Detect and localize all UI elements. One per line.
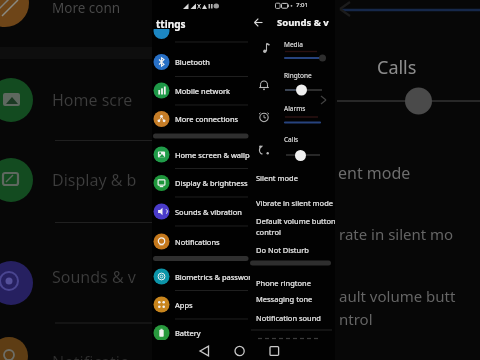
staticText: More connections xyxy=(175,114,239,124)
staticText: Apps xyxy=(175,300,193,310)
button[interactable] xyxy=(266,343,283,359)
button[interactable]: Bluetooth xyxy=(152,48,248,76)
staticText: Biometrics & passwor xyxy=(175,272,252,282)
button[interactable]: Sounds & vibration xyxy=(152,198,248,226)
button[interactable]: Battery xyxy=(152,319,248,347)
button[interactable]: Messaging tone xyxy=(250,294,335,308)
staticText: Notifications xyxy=(175,237,220,247)
button[interactable]: Notification sound xyxy=(250,313,335,327)
button[interactable]: Apps xyxy=(152,291,248,319)
staticText: Vibrate in silent mode xyxy=(256,198,333,208)
staticText: Home scre xyxy=(52,89,133,111)
staticText: Calls xyxy=(284,135,299,144)
staticText: control xyxy=(256,227,281,237)
button[interactable]: Notifications xyxy=(152,228,248,256)
button[interactable]: Biometrics & passwor xyxy=(152,263,248,291)
button[interactable]: Silent mode xyxy=(250,173,335,187)
staticText: Default volume button xyxy=(256,216,335,226)
button[interactable]: Phone ringtone xyxy=(250,278,335,292)
button[interactable] xyxy=(232,343,249,359)
staticText: Do Not Disturb xyxy=(256,245,309,255)
staticText: Display & brightness xyxy=(175,178,248,188)
staticText: Sounds & v xyxy=(277,16,329,29)
button[interactable]: control xyxy=(250,227,335,241)
staticText: Media xyxy=(284,40,303,49)
staticText: ent mode xyxy=(338,162,411,184)
staticText: rate in silent mo xyxy=(339,224,454,244)
button[interactable] xyxy=(252,16,265,29)
button[interactable]: Do Not Disturb xyxy=(250,245,335,259)
staticText: Mobile network xyxy=(175,86,231,96)
staticText: Phone ringtone xyxy=(256,278,311,288)
button[interactable]: Home screen & wallpa xyxy=(152,141,248,169)
staticText: 7:01 xyxy=(296,1,308,9)
staticText: Home screen & wallpa xyxy=(175,150,254,160)
staticText: ntrol xyxy=(339,309,373,329)
staticText: Silent mode xyxy=(256,173,298,183)
staticText: Notificatio xyxy=(52,351,130,360)
staticText: Sounds & v xyxy=(52,266,136,288)
staticText: Calls xyxy=(377,55,417,80)
staticText: Messaging tone xyxy=(256,294,313,304)
staticText: Bluetooth xyxy=(175,57,210,67)
staticText: ttings xyxy=(156,17,186,31)
staticText: Alarms xyxy=(284,104,306,113)
button[interactable]: More connections xyxy=(152,105,248,133)
button[interactable] xyxy=(196,343,213,359)
staticText: Notification sound xyxy=(256,313,321,323)
button[interactable]: Mobile network xyxy=(152,77,248,105)
staticText: Ringtone xyxy=(284,71,312,80)
staticText: Sounds & vibration xyxy=(175,207,242,217)
staticText: ault volume butt xyxy=(339,286,456,306)
staticText: Battery xyxy=(175,328,201,338)
button[interactable]: Vibrate in silent mode xyxy=(250,198,335,212)
button[interactable]: Display & brightness xyxy=(152,169,248,197)
button[interactable]: Default volume button xyxy=(250,216,335,230)
staticText: More conn xyxy=(52,0,121,17)
staticText: Display & b xyxy=(52,169,137,191)
